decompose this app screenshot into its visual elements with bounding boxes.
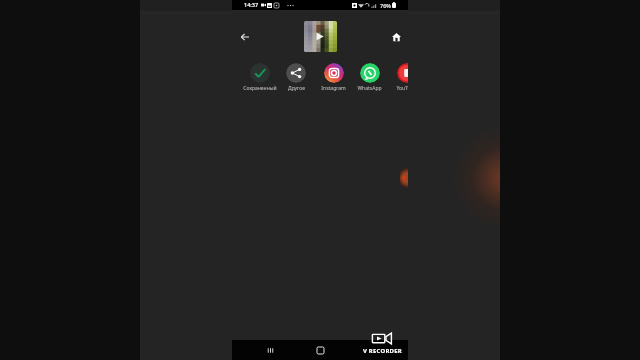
button[interactable]: Video preview [304, 21, 337, 52]
button[interactable]: Record [400, 168, 408, 188]
button[interactable]: Сохраненный [235, 58, 285, 94]
button[interactable]: Back [236, 28, 253, 45]
button[interactable]: YouTube [381, 58, 408, 94]
staticText: WhatsApp [357, 85, 382, 92]
button[interactable]: Home [308, 340, 332, 360]
staticText: 14:37 [244, 1, 259, 8]
button[interactable]: Instagram [308, 58, 358, 94]
button[interactable]: WhatsApp [344, 58, 394, 94]
staticText: YouTube [396, 85, 408, 92]
staticText: Сохраненный [243, 85, 277, 92]
button[interactable]: Другое [271, 58, 321, 94]
staticText: Другое [288, 85, 305, 92]
staticText: 76% [380, 2, 391, 9]
staticText: V RECORDER [363, 347, 402, 355]
button[interactable]: Recent apps [258, 340, 282, 360]
staticText: Instagram [321, 85, 346, 92]
button[interactable]: Home [387, 28, 405, 46]
button[interactable]: Back [358, 340, 382, 360]
